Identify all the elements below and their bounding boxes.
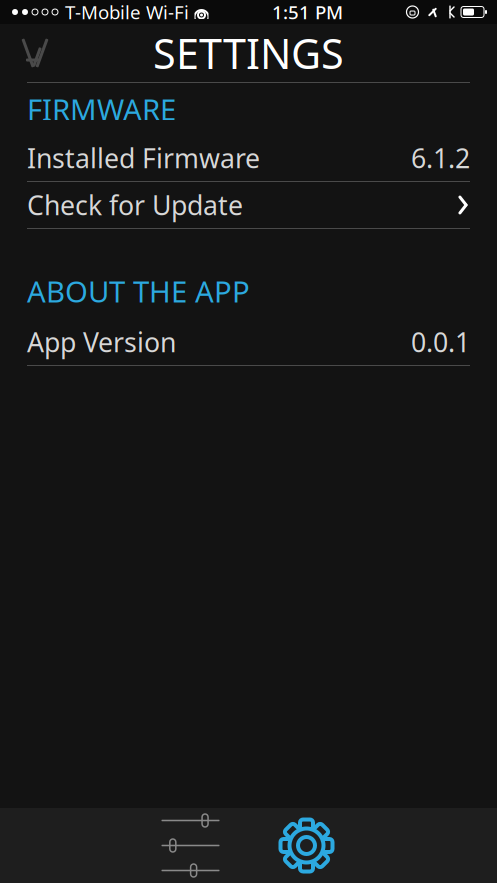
staticText: T-Mobile Wi-Fi xyxy=(65,0,189,24)
staticText: FIRMWARE xyxy=(27,89,176,128)
staticText: Installed Firmware xyxy=(27,140,260,176)
staticText: SETTINGS xyxy=(153,26,344,80)
staticText: 0.0.1 xyxy=(411,324,470,360)
staticText: Check for Update xyxy=(27,187,243,223)
staticText: ABOUT THE APP xyxy=(27,271,250,310)
staticText: App Version xyxy=(27,324,176,360)
button[interactable]: Settings xyxy=(270,809,342,881)
button[interactable]: Check for Update xyxy=(27,182,470,228)
staticText: 6.1.2 xyxy=(411,140,470,176)
staticText: 1:51 PM xyxy=(272,0,343,24)
button[interactable]: Home xyxy=(0,36,60,70)
button[interactable]: Controls xyxy=(154,809,226,881)
